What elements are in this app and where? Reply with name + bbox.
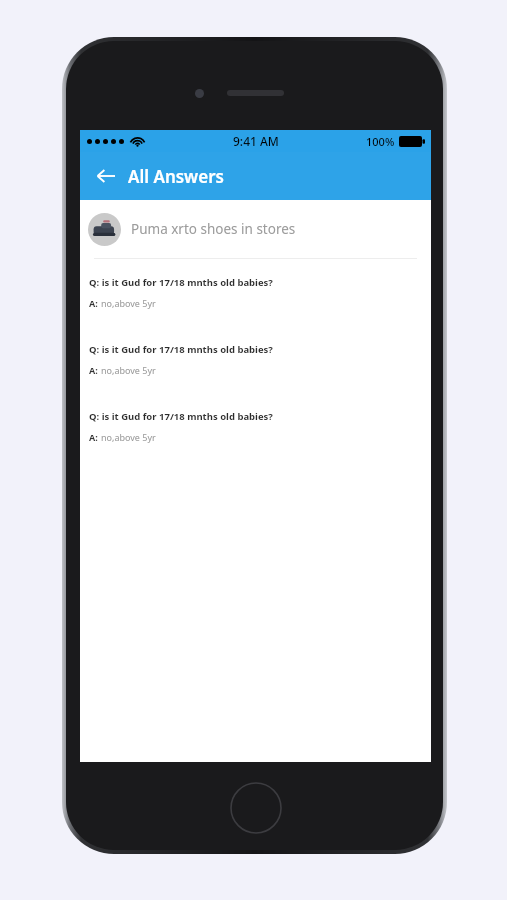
staticText: Puma xrto shoes in stores [131, 220, 296, 238]
staticText: 9:41 AM [233, 133, 279, 149]
staticText: no,above 5yr [101, 297, 156, 309]
button[interactable]: Q: is it Gud for 17/18 mnths old babies? [80, 276, 431, 309]
staticText: 100% [366, 134, 395, 149]
staticText: A: [89, 431, 98, 443]
staticText: no,above 5yr [101, 364, 156, 376]
staticText: Q: is it Gud for 17/18 mnths old babies? [89, 410, 273, 423]
button[interactable]: Back [88, 158, 124, 194]
staticText: Q: is it Gud for 17/18 mnths old babies? [89, 343, 273, 356]
staticText: A: [89, 297, 98, 309]
staticText: Q: is it Gud for 17/18 mnths old babies? [89, 276, 273, 289]
staticText: All Answers [128, 165, 224, 188]
button[interactable]: Q: is it Gud for 17/18 mnths old babies? [80, 410, 431, 443]
staticText: no,above 5yr [101, 431, 156, 443]
button[interactable]: Q: is it Gud for 17/18 mnths old babies? [80, 343, 431, 376]
staticText: A: [89, 364, 98, 376]
button[interactable]: Puma xrto shoes in stores [80, 200, 431, 258]
